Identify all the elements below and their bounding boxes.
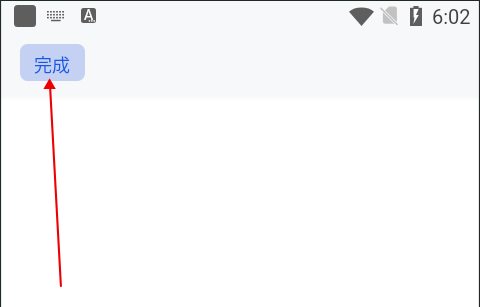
staticText: 完成 [34,51,70,77]
other: Wi-Fi [349,7,374,26]
other: No SIM card [380,6,398,25]
button[interactable]: Keyboard [47,11,64,21]
button[interactable]: Input language [81,8,96,23]
staticText: 6:02 [432,5,471,28]
other: Battery charging [410,6,422,26]
staticText: A [84,8,94,22]
button[interactable]: 完成 [20,44,85,81]
button[interactable]: App icon [14,5,36,27]
